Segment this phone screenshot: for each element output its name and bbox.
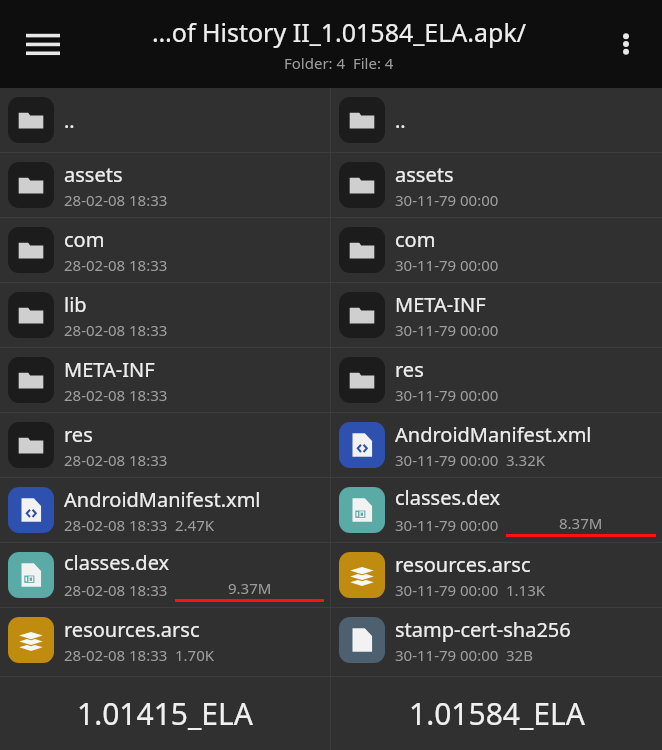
staticText: 30-11-79 00:00 bbox=[395, 190, 499, 210]
staticText: .. bbox=[64, 107, 75, 134]
staticText: Folder: 4 File: 4 bbox=[284, 53, 394, 73]
staticText: 30-11-79 00:00 bbox=[395, 515, 499, 535]
button[interactable]: Menu bbox=[14, 15, 72, 73]
staticText: 2.47K bbox=[175, 515, 215, 535]
button[interactable]: resources.arsc bbox=[0, 608, 330, 672]
button[interactable]: 1.01584_ELA bbox=[331, 677, 662, 750]
button[interactable]: classes.dex bbox=[0, 543, 330, 607]
staticText: lib bbox=[64, 291, 87, 318]
button[interactable]: resources.arsc bbox=[331, 543, 662, 607]
staticText: 28-02-08 18:33 bbox=[64, 190, 168, 210]
staticText: 28-02-08 18:33 bbox=[64, 255, 168, 275]
staticText: AndroidManifest.xml bbox=[64, 486, 261, 513]
staticText: 28-02-08 18:33 bbox=[64, 450, 168, 470]
staticText: stamp-cert-sha256 bbox=[395, 616, 571, 643]
button[interactable]: stamp-cert-sha256 bbox=[331, 608, 662, 672]
button[interactable]: com bbox=[0, 218, 330, 282]
button[interactable]: classes.dex bbox=[331, 478, 662, 542]
staticText: classes.dex bbox=[395, 484, 501, 511]
button[interactable]: More options bbox=[600, 18, 652, 70]
staticText: …of History II_1.01584_ELA.apk/ bbox=[152, 15, 527, 49]
staticText: .. bbox=[395, 107, 406, 134]
staticText: 28-02-08 18:33 bbox=[64, 385, 168, 405]
staticText: 1.70K bbox=[175, 645, 215, 665]
staticText: 28-02-08 18:33 bbox=[64, 320, 168, 340]
button[interactable]: res bbox=[0, 413, 330, 477]
staticText: resources.arsc bbox=[395, 551, 531, 578]
staticText: resources.arsc bbox=[64, 616, 200, 643]
staticText: 1.13K bbox=[506, 580, 546, 600]
button[interactable]: lib bbox=[0, 283, 330, 347]
staticText: 30-11-79 00:00 bbox=[395, 385, 499, 405]
staticText: 30-11-79 00:00 bbox=[395, 450, 499, 470]
button[interactable]: assets bbox=[0, 153, 330, 217]
staticText: com bbox=[395, 226, 436, 253]
staticText: 28-02-08 18:33 bbox=[64, 580, 168, 600]
button[interactable]: .. bbox=[331, 88, 662, 152]
staticText: META-INF bbox=[395, 291, 486, 318]
staticText: 32B bbox=[506, 645, 533, 665]
staticText: classes.dex bbox=[64, 549, 170, 576]
staticText: AndroidManifest.xml bbox=[395, 421, 592, 448]
button[interactable]: com bbox=[331, 218, 662, 282]
staticText: 28-02-08 18:33 bbox=[64, 515, 168, 535]
staticText: 3.32K bbox=[506, 450, 546, 470]
button[interactable]: META-INF bbox=[331, 283, 662, 347]
button[interactable]: AndroidManifest.xml bbox=[0, 478, 330, 542]
staticText: 30-11-79 00:00 bbox=[395, 645, 499, 665]
staticText: assets bbox=[395, 161, 454, 188]
button[interactable]: AndroidManifest.xml bbox=[331, 413, 662, 477]
button[interactable]: assets bbox=[331, 153, 662, 217]
staticText: res bbox=[395, 356, 424, 383]
staticText: 28-02-08 18:33 bbox=[64, 645, 168, 665]
staticText: 30-11-79 00:00 bbox=[395, 580, 499, 600]
staticText: 30-11-79 00:00 bbox=[395, 320, 499, 340]
staticText: META-INF bbox=[64, 356, 155, 383]
staticText: assets bbox=[64, 161, 123, 188]
staticText: 30-11-79 00:00 bbox=[395, 255, 499, 275]
staticText: com bbox=[64, 226, 105, 253]
staticText: 8.37M bbox=[559, 513, 603, 533]
button[interactable]: 1.01415_ELA bbox=[0, 677, 330, 750]
button[interactable]: .. bbox=[0, 88, 330, 152]
staticText: 1.01584_ELA bbox=[409, 693, 585, 734]
staticText: 1.01415_ELA bbox=[77, 693, 253, 734]
staticText: res bbox=[64, 421, 93, 448]
staticText: 9.37M bbox=[228, 578, 272, 598]
button[interactable]: META-INF bbox=[0, 348, 330, 412]
button[interactable]: res bbox=[331, 348, 662, 412]
